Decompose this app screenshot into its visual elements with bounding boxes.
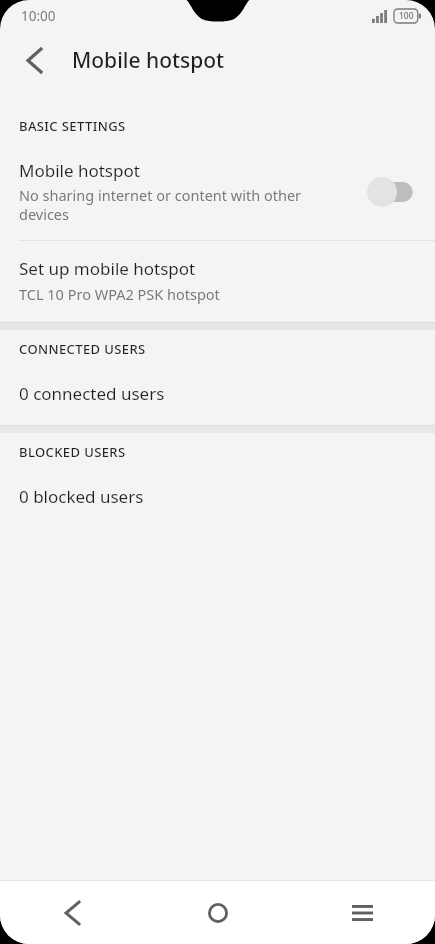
staticText: No sharing internet or content with othe… xyxy=(19,185,344,224)
button[interactable]: Back xyxy=(0,881,145,944)
button[interactable]: 0 blocked users xyxy=(0,471,435,528)
staticText: 0 blocked users xyxy=(19,485,144,508)
button[interactable]: Back xyxy=(10,36,58,84)
staticText: Set up mobile hotspot xyxy=(19,257,196,280)
staticText: 0 connected users xyxy=(19,382,165,405)
staticText: BLOCKED USERS xyxy=(19,443,126,461)
staticText: BASIC SETTINGS xyxy=(19,117,126,135)
staticText: TCL 10 Pro WPA2 PSK hotspot xyxy=(19,284,220,304)
button[interactable]: Home xyxy=(145,881,290,944)
button[interactable]: Recent apps xyxy=(290,881,435,944)
button[interactable]: 0 connected users xyxy=(0,368,435,425)
button[interactable]: Mobile hotspot toggle xyxy=(366,177,418,207)
staticText: Mobile hotspot xyxy=(19,159,140,182)
staticText: CONNECTED USERS xyxy=(19,340,146,358)
staticText: 100 xyxy=(399,10,414,22)
staticText: Mobile hotspot xyxy=(72,46,225,75)
button[interactable]: Set up mobile hotspot xyxy=(0,241,435,322)
staticText: 10:00 xyxy=(21,7,56,25)
button[interactable]: Mobile hotspot xyxy=(0,145,435,240)
